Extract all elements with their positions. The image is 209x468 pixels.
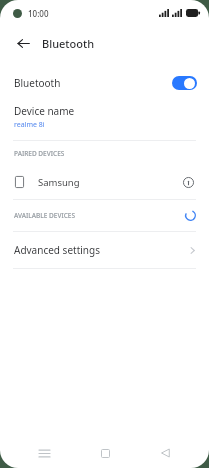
- staticText: Bluetooth: [14, 76, 61, 90]
- button[interactable]: Back: [148, 440, 182, 466]
- staticText: 10:00: [28, 8, 49, 19]
- staticText: AVAILABLE DEVICES: [14, 211, 76, 220]
- button[interactable]: Device details: [180, 174, 196, 190]
- button[interactable]: Home: [88, 440, 122, 466]
- staticText: realme 8i: [14, 120, 45, 130]
- staticText: Samsung: [38, 176, 80, 189]
- button[interactable]: Bluetooth: [0, 66, 209, 100]
- button[interactable]: Bluetooth on: [172, 76, 197, 90]
- staticText: Advanced settings: [14, 243, 100, 257]
- button[interactable]: Advanced settings: [0, 232, 209, 268]
- button[interactable]: Samsung: [0, 165, 209, 199]
- button[interactable]: Back: [12, 32, 34, 54]
- staticText: PAIRED DEVICES: [14, 149, 65, 158]
- staticText: Device name: [14, 104, 75, 118]
- button[interactable]: Recent apps: [27, 440, 61, 466]
- staticText: Bluetooth: [42, 36, 95, 51]
- button[interactable]: Device name: [0, 100, 209, 134]
